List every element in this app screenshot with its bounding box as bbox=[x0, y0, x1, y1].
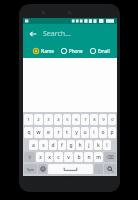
button[interactable]: e bbox=[44, 127, 53, 138]
button[interactable]: m bbox=[94, 152, 103, 162]
button[interactable]: y bbox=[72, 127, 80, 138]
staticText: 7 bbox=[84, 117, 87, 123]
button[interactable]: 0 bbox=[108, 114, 116, 125]
button[interactable]: Search... bbox=[43, 24, 114, 44]
button[interactable]: 6 bbox=[72, 114, 80, 125]
staticText: t bbox=[66, 129, 68, 136]
staticText: z bbox=[39, 154, 42, 161]
staticText: 6 bbox=[75, 117, 78, 123]
staticText: e bbox=[47, 129, 50, 136]
button[interactable]: u bbox=[81, 127, 89, 138]
staticText: 5 bbox=[66, 117, 69, 123]
button[interactable]: c bbox=[54, 152, 63, 162]
staticText: g bbox=[69, 142, 73, 149]
button[interactable]: h bbox=[76, 140, 84, 150]
button[interactable]: d bbox=[49, 140, 57, 150]
button[interactable]: Sym bbox=[24, 164, 37, 174]
staticText: v bbox=[67, 154, 70, 161]
staticText: h bbox=[78, 142, 82, 149]
button[interactable]: g bbox=[67, 140, 75, 150]
staticText: o bbox=[101, 129, 105, 136]
staticText: 2 bbox=[37, 117, 40, 123]
staticText: Name bbox=[41, 48, 54, 54]
button[interactable]: 9 bbox=[99, 114, 107, 125]
button[interactable]: n bbox=[84, 152, 93, 162]
button[interactable]: Emoji bbox=[38, 164, 47, 174]
button[interactable]: a bbox=[29, 140, 38, 150]
staticText: p bbox=[110, 129, 114, 136]
button[interactable]: . bbox=[94, 164, 103, 174]
button[interactable]: k bbox=[94, 140, 102, 150]
button[interactable] bbox=[48, 164, 93, 174]
staticText: ⌫ bbox=[106, 154, 114, 160]
button[interactable]: Name bbox=[33, 45, 54, 57]
staticText: d bbox=[51, 142, 55, 149]
button[interactable]: z bbox=[36, 152, 44, 162]
button[interactable]: l bbox=[103, 140, 111, 150]
button[interactable]: 8 bbox=[90, 114, 98, 125]
staticText: c bbox=[57, 154, 60, 161]
button[interactable]: 1 bbox=[24, 114, 33, 125]
staticText: 1 bbox=[27, 117, 30, 123]
button[interactable]: Search bbox=[104, 164, 116, 174]
button[interactable]: Phone bbox=[61, 45, 83, 57]
staticText: 9 bbox=[102, 117, 105, 123]
staticText: j bbox=[88, 142, 90, 149]
staticText: q bbox=[27, 129, 31, 136]
button[interactable]: ⇧ bbox=[24, 152, 35, 162]
button[interactable]: Back bbox=[26, 27, 40, 41]
staticText: r bbox=[57, 129, 60, 136]
button[interactable]: p bbox=[108, 127, 116, 138]
button[interactable]: o bbox=[99, 127, 107, 138]
button[interactable]: 7 bbox=[81, 114, 89, 125]
staticText: Sym bbox=[27, 167, 34, 172]
staticText: u bbox=[83, 129, 87, 136]
button[interactable]: v bbox=[64, 152, 73, 162]
staticText: k bbox=[97, 142, 100, 149]
staticText: 0 bbox=[111, 117, 114, 123]
staticText: f bbox=[61, 142, 63, 149]
staticText: Search... bbox=[43, 29, 71, 39]
staticText: a bbox=[32, 142, 35, 149]
staticText: w bbox=[36, 129, 41, 136]
staticText: i bbox=[93, 129, 95, 136]
button[interactable]: s bbox=[39, 140, 48, 150]
button[interactable]: r bbox=[54, 127, 62, 138]
button[interactable]: t bbox=[63, 127, 71, 138]
staticText: . bbox=[98, 166, 100, 172]
staticText: ⇧ bbox=[27, 154, 32, 160]
button[interactable]: q bbox=[24, 127, 33, 138]
button[interactable]: Email bbox=[90, 45, 110, 57]
staticText: x bbox=[48, 154, 51, 161]
staticText: 3 bbox=[47, 117, 50, 123]
button[interactable]: 2 bbox=[34, 114, 43, 125]
button[interactable]: f bbox=[58, 140, 66, 150]
button[interactable]: x bbox=[45, 152, 53, 162]
button[interactable]: b bbox=[74, 152, 83, 162]
staticText: Email bbox=[98, 48, 110, 54]
staticText: 4 bbox=[57, 117, 60, 123]
staticText: l bbox=[106, 142, 108, 149]
staticText: y bbox=[75, 129, 78, 136]
button[interactable]: 5 bbox=[63, 114, 71, 125]
button[interactable]: i bbox=[90, 127, 98, 138]
button[interactable]: ⌫ bbox=[104, 152, 116, 162]
button[interactable]: w bbox=[34, 127, 43, 138]
button[interactable]: j bbox=[85, 140, 93, 150]
staticText: Phone bbox=[69, 48, 83, 54]
staticText: n bbox=[87, 154, 91, 161]
button[interactable]: 3 bbox=[44, 114, 53, 125]
staticText: b bbox=[77, 154, 81, 161]
staticText: m bbox=[96, 154, 101, 161]
staticText: s bbox=[42, 142, 45, 149]
button[interactable]: 4 bbox=[54, 114, 62, 125]
staticText: 8 bbox=[93, 117, 96, 123]
